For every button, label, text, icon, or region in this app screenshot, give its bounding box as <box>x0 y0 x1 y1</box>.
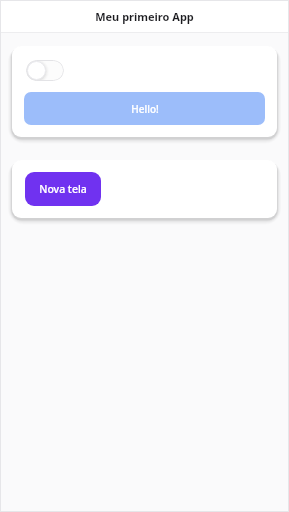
button[interactable]: Nova tela <box>25 172 101 206</box>
button[interactable]: Hello! <box>24 92 265 125</box>
staticText: Meu primeiro App <box>95 9 194 24</box>
staticText: Nova tela <box>39 182 87 196</box>
staticText: Hello! <box>131 102 159 116</box>
button[interactable]: Toggle switch <box>26 60 64 81</box>
